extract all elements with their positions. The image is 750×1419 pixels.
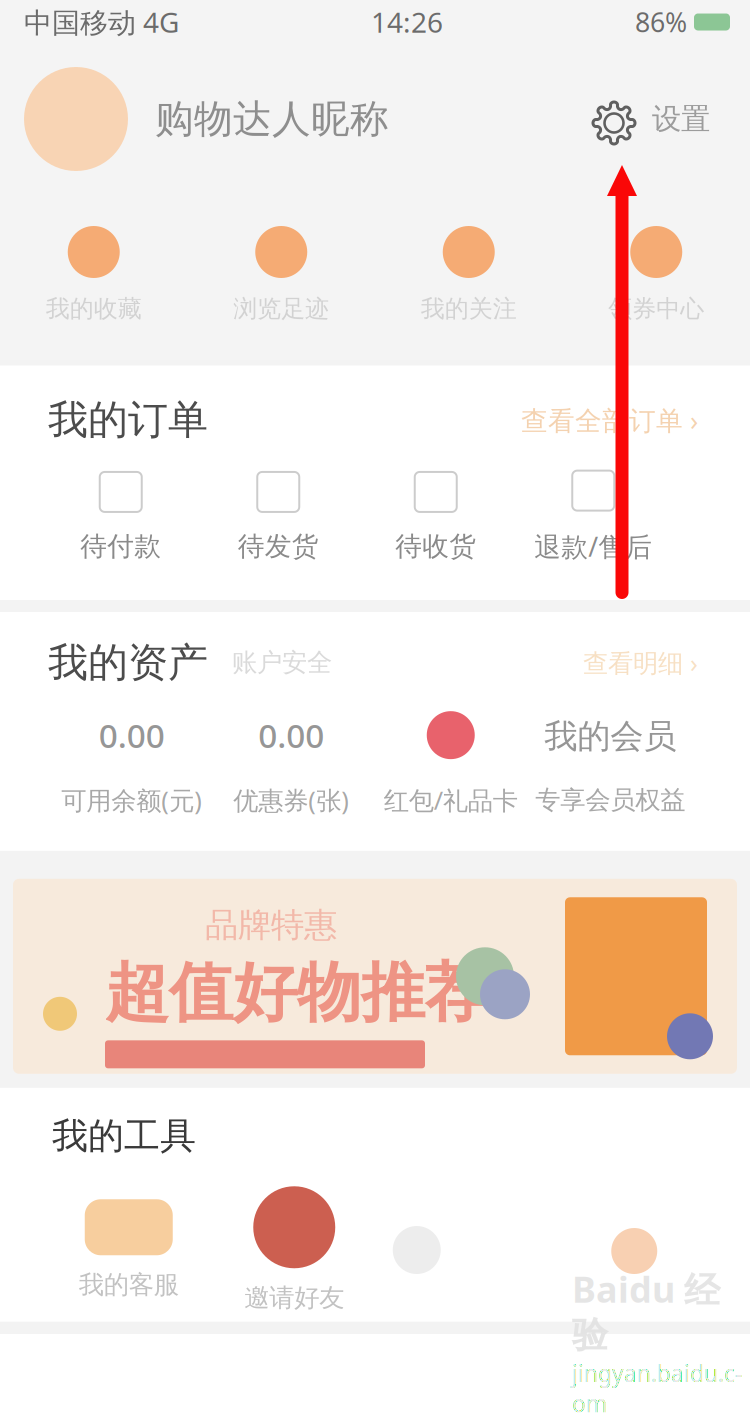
staticText: 浏览足迹 xyxy=(233,294,329,323)
staticText: 86% xyxy=(635,4,687,40)
button[interactable]: 红包/礼品卡 xyxy=(371,711,530,817)
staticText: 邀请好友 xyxy=(244,1282,344,1313)
staticText: 我的工具 xyxy=(52,1114,196,1158)
staticText: 待付款 xyxy=(80,530,161,563)
button[interactable]: 我的会员 xyxy=(530,712,690,815)
button[interactable]: 0.00 xyxy=(52,711,211,817)
button[interactable] xyxy=(377,1178,542,1322)
button[interactable]: 我的客服 xyxy=(46,1199,211,1300)
staticText: 账户安全 xyxy=(208,647,356,678)
button[interactable] xyxy=(542,1178,708,1322)
button[interactable]: 领券中心 xyxy=(562,226,750,323)
button[interactable]: 待付款 xyxy=(42,472,199,563)
staticText: 超值好物推荐 xyxy=(105,954,489,1032)
staticText: 0.00 xyxy=(99,713,165,757)
button[interactable]: 浏览足迹 xyxy=(187,226,375,323)
staticText: 我的订单 xyxy=(48,395,208,445)
button[interactable]: 退款/售后 xyxy=(514,471,672,564)
staticText: 待发货 xyxy=(238,530,319,563)
staticText: 购物达人昵称 xyxy=(155,95,389,143)
button[interactable]: 待发货 xyxy=(199,472,357,563)
staticText: Baidu 经验 xyxy=(572,1265,720,1357)
staticText: 红包/礼品卡 xyxy=(384,783,518,817)
staticText: 退款/售后 xyxy=(534,529,652,564)
button[interactable]: Avatar xyxy=(24,67,128,171)
staticText: 14:26 xyxy=(371,3,443,41)
staticText: 可用余额(元) xyxy=(61,783,202,817)
staticText: 0.00 xyxy=(258,713,324,757)
button[interactable]: 0.00 xyxy=(211,711,371,817)
button[interactable]: 邀请好友 xyxy=(211,1186,377,1313)
staticText: 领券中心 xyxy=(608,294,704,323)
staticText: 中国移动 4G xyxy=(24,3,179,41)
staticText: 设置 xyxy=(652,101,710,137)
staticText: jingyan.baidu.com xyxy=(572,1358,742,1418)
staticText: 优惠券(张) xyxy=(233,783,349,817)
button[interactable]: 查看全部订单 › xyxy=(521,402,698,438)
staticText: 我的资产 xyxy=(48,638,208,687)
staticText: 查看全部订单 › xyxy=(521,402,698,438)
button[interactable]: 设置 xyxy=(646,101,716,137)
staticText: 专享会员权益 xyxy=(535,784,685,815)
button[interactable]: 我的收藏 xyxy=(0,226,187,323)
button[interactable]: 我的关注 xyxy=(375,226,562,323)
staticText: 我的会员 xyxy=(544,716,676,757)
staticText: 我的收藏 xyxy=(46,294,142,323)
button[interactable]: 待收货 xyxy=(357,472,514,563)
staticText: 品牌特惠 xyxy=(205,905,337,946)
button[interactable]: 品牌特惠 xyxy=(0,851,750,1074)
staticText: 待收货 xyxy=(395,530,476,563)
staticText: 我的关注 xyxy=(421,294,517,323)
staticText: 我的客服 xyxy=(79,1269,179,1300)
button[interactable]: 查看明细 › xyxy=(583,646,698,679)
staticText: 查看明细 › xyxy=(583,646,698,679)
